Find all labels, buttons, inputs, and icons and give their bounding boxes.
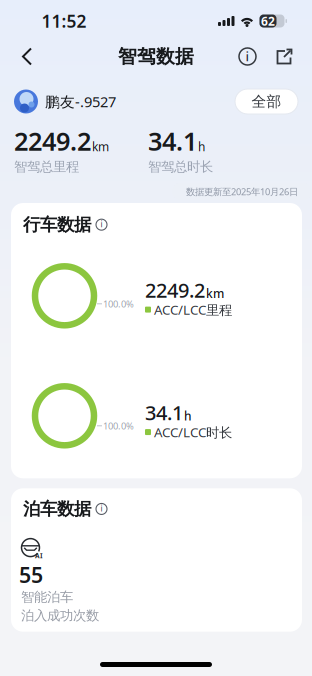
button[interactable]: Info [96,219,107,230]
staticText: 55 [19,561,43,589]
staticText: 泊入成功次数 [21,607,99,624]
button[interactable]: Back [16,43,42,69]
staticText: 泊车数据 [23,498,91,520]
staticText: km [92,139,109,155]
button[interactable]: Info [239,48,256,65]
staticText: 2249.2 [145,277,205,303]
staticText: 数据更新至2025年10月26日 [186,185,298,198]
staticText: 鹏友-.9527 [45,92,116,111]
staticText: 62 [261,13,275,29]
staticText: AI [35,551,43,560]
staticText: 100.0% [103,420,134,432]
staticText: 行车数据 [23,214,91,235]
staticText: ACC/LCC时长 [154,423,232,441]
staticText: 智驾数据 [118,45,194,68]
staticText: 100.0% [103,298,134,310]
staticText: i [100,219,102,229]
button[interactable]: Info [96,503,107,514]
button[interactable]: Share [275,47,293,65]
staticText: 34.1 [148,124,197,158]
button[interactable]: 全部 [235,89,298,114]
staticText: 11:52 [41,9,86,32]
staticText: h [198,139,205,155]
staticText: 34.1 [145,399,183,426]
staticText: km [206,285,224,301]
staticText: 2249.2 [14,124,91,158]
staticText: i [245,47,249,65]
staticText: 智驾总时长 [148,159,213,175]
staticText: ACC/LCC里程 [154,301,232,318]
staticText: 智驾总里程 [14,159,79,175]
staticText: h [184,408,192,424]
staticText: i [100,503,102,514]
staticText: 智能泊车 [21,589,73,605]
staticText: 全部 [251,92,281,110]
